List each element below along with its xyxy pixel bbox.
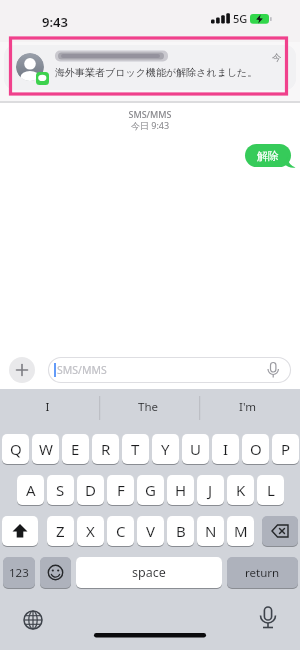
button[interactable] xyxy=(262,516,298,546)
staticText: K xyxy=(236,480,246,500)
button[interactable] xyxy=(48,357,291,383)
staticText: The xyxy=(120,399,176,415)
staticText: space xyxy=(132,564,166,581)
staticText: Q xyxy=(10,439,22,459)
staticText: I xyxy=(223,439,229,459)
button[interactable]: space xyxy=(76,557,222,588)
staticText: 解除 xyxy=(257,149,279,163)
staticText: M xyxy=(234,521,248,541)
button[interactable]: return xyxy=(227,557,298,588)
staticText: 海外事業者ブロック機能が解除されました。 xyxy=(55,66,258,79)
button[interactable]: O xyxy=(242,434,269,464)
button[interactable] xyxy=(4,45,296,90)
button[interactable]: C xyxy=(107,516,134,546)
staticText: P xyxy=(281,439,291,459)
button[interactable]: A xyxy=(17,475,44,505)
staticText: D xyxy=(85,480,96,500)
button[interactable]: W xyxy=(32,434,59,464)
button[interactable]: U xyxy=(182,434,209,464)
button[interactable]: X xyxy=(77,516,104,546)
staticText: Y xyxy=(161,439,170,459)
button[interactable]: H xyxy=(167,475,194,505)
staticText: 今 xyxy=(272,52,282,64)
button[interactable]: R xyxy=(92,434,119,464)
button[interactable]: F xyxy=(107,475,134,505)
staticText: Z xyxy=(56,521,65,541)
staticText: return xyxy=(245,565,280,581)
staticText: G xyxy=(145,480,156,500)
staticText: 9:43 xyxy=(42,13,68,31)
staticText: A xyxy=(26,480,36,500)
staticText: 5G xyxy=(233,11,248,26)
button[interactable]: K xyxy=(227,475,254,505)
staticText: B xyxy=(176,521,186,541)
button[interactable]: G xyxy=(137,475,164,505)
staticText: R xyxy=(101,439,111,459)
button[interactable]: 解除 xyxy=(245,144,291,167)
staticText: O xyxy=(250,439,262,459)
staticText: SMS/MMS xyxy=(57,363,107,377)
button[interactable]: D xyxy=(77,475,104,505)
button[interactable]: T xyxy=(122,434,149,464)
button[interactable]: N xyxy=(197,516,224,546)
staticText: T xyxy=(131,439,140,459)
staticText: C xyxy=(116,521,126,541)
button[interactable] xyxy=(33,395,166,420)
staticText: E xyxy=(71,439,80,459)
button[interactable]: Q xyxy=(2,434,29,464)
button[interactable]: J xyxy=(197,475,224,505)
button[interactable]: 123 xyxy=(3,557,35,588)
button[interactable]: P xyxy=(272,434,299,464)
staticText: U xyxy=(190,439,201,459)
staticText: 123 xyxy=(9,565,29,581)
button[interactable]: E xyxy=(62,434,89,464)
staticText: F xyxy=(117,480,125,500)
staticText: S xyxy=(56,480,65,500)
button[interactable]: Y xyxy=(152,434,179,464)
staticText: 今日 9:43 xyxy=(0,119,300,131)
staticText: W xyxy=(39,439,53,459)
button[interactable]: M xyxy=(227,516,254,546)
button[interactable]: V xyxy=(137,516,164,546)
button[interactable] xyxy=(2,516,38,546)
staticText: X xyxy=(86,521,95,541)
staticText: I'm xyxy=(220,399,275,415)
staticText: N xyxy=(205,521,217,541)
button[interactable]: I xyxy=(212,434,239,464)
staticText: I xyxy=(20,399,75,415)
button[interactable]: S xyxy=(47,475,74,505)
staticText: SMS/MMS xyxy=(0,108,300,120)
staticText: J xyxy=(208,480,213,500)
button[interactable]: B xyxy=(167,516,194,546)
button[interactable]: Z xyxy=(47,516,74,546)
staticText: H xyxy=(175,480,187,500)
staticText: L xyxy=(267,480,275,500)
button[interactable]: L xyxy=(257,475,284,505)
staticText: V xyxy=(146,521,156,541)
button[interactable] xyxy=(40,557,71,588)
button[interactable] xyxy=(9,357,35,383)
